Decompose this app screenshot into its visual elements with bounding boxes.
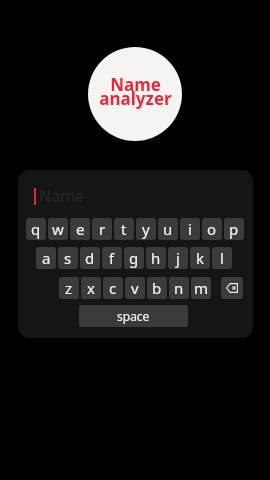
staticText: j <box>176 248 180 268</box>
staticText: z <box>65 278 73 298</box>
button[interactable]: g <box>124 247 144 269</box>
staticText: Name <box>39 185 85 207</box>
button[interactable]: f <box>102 247 122 269</box>
staticText: o <box>207 219 217 239</box>
button[interactable]: v <box>125 277 145 299</box>
staticText: w <box>52 219 64 239</box>
button[interactable]: y <box>136 218 156 240</box>
staticText: f <box>109 248 115 268</box>
button[interactable]: Backspace <box>221 277 243 299</box>
button[interactable]: o <box>202 218 222 240</box>
staticText: s <box>64 248 72 268</box>
button[interactable]: i <box>180 218 200 240</box>
button[interactable]: s <box>58 247 78 269</box>
button[interactable]: h <box>146 247 166 269</box>
staticText: u <box>163 219 173 239</box>
button[interactable]: t <box>114 218 134 240</box>
staticText: b <box>152 278 162 298</box>
button[interactable]: q <box>26 218 46 240</box>
button[interactable]: Name <box>34 185 85 207</box>
button[interactable]: u <box>158 218 178 240</box>
staticText: x <box>87 278 95 298</box>
button[interactable]: n <box>169 277 189 299</box>
button[interactable]: l <box>212 247 232 269</box>
staticText: l <box>220 248 224 268</box>
button[interactable]: a <box>36 247 56 269</box>
button[interactable]: c <box>103 277 123 299</box>
staticText: e <box>76 219 85 239</box>
staticText: k <box>196 248 205 268</box>
staticText: p <box>229 219 239 239</box>
button[interactable]: j <box>168 247 188 269</box>
button[interactable]: e <box>70 218 90 240</box>
staticText: g <box>129 248 139 268</box>
button[interactable]: m <box>191 277 211 299</box>
staticText: m <box>194 278 209 298</box>
staticText: a <box>42 248 51 268</box>
staticText: h <box>151 248 161 268</box>
button[interactable]: d <box>80 247 100 269</box>
staticText: v <box>131 278 139 298</box>
button[interactable]: x <box>81 277 101 299</box>
staticText: d <box>85 248 95 268</box>
button[interactable]: Name analyzer <box>88 47 182 141</box>
button[interactable]: w <box>48 218 68 240</box>
staticText: t <box>121 219 127 239</box>
staticText: n <box>174 278 184 298</box>
staticText: Name analyzer <box>99 73 172 110</box>
button[interactable]: r <box>92 218 112 240</box>
button[interactable]: p <box>224 218 244 240</box>
staticText: i <box>188 219 192 239</box>
staticText: c <box>109 278 117 298</box>
staticText: r <box>99 219 106 239</box>
button[interactable]: z <box>59 277 79 299</box>
staticText: y <box>142 219 150 239</box>
button[interactable]: b <box>147 277 167 299</box>
staticText: space <box>117 308 150 324</box>
staticText: q <box>31 219 41 239</box>
button[interactable]: space <box>79 305 188 327</box>
button[interactable]: k <box>190 247 210 269</box>
